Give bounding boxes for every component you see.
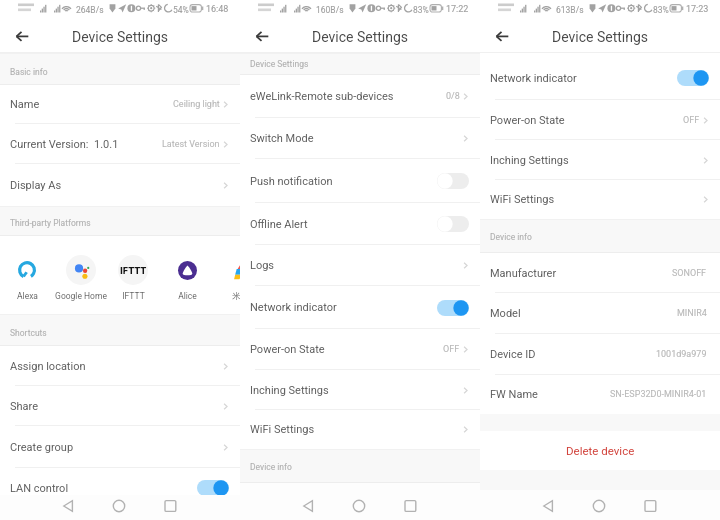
staticText: SONOFF	[672, 268, 707, 279]
staticText: Ceiling light	[173, 99, 220, 110]
staticText: Model	[490, 307, 521, 320]
button[interactable]: Home	[344, 487, 374, 517]
staticText: Offline Alert	[250, 218, 308, 231]
button[interactable]: Back	[249, 23, 275, 49]
staticText: OFF	[443, 344, 460, 355]
staticText: Switch Mode	[250, 132, 314, 145]
staticText: MINIR4	[677, 308, 707, 319]
staticText: SN-ESP32D0-MINIR4-01	[610, 389, 707, 400]
staticText: Inching Settings	[250, 384, 329, 397]
button[interactable]: Logs	[240, 245, 480, 286]
button[interactable]: WiFi Settings	[480, 180, 720, 219]
staticText: Device info	[490, 232, 532, 242]
button[interactable]: Recent apps	[635, 490, 665, 520]
button[interactable]: Google Home	[54, 236, 108, 314]
button[interactable]: Home	[104, 495, 134, 520]
staticText: Power-on State	[250, 343, 325, 356]
button[interactable]: LAN control	[0, 468, 240, 508]
button[interactable]: IFTTT	[106, 236, 160, 314]
staticText: Alexa	[17, 291, 38, 301]
staticText: Assign location	[10, 360, 86, 373]
button[interactable]: Manufacturer	[480, 253, 720, 293]
staticText: 54%	[173, 5, 189, 15]
button[interactable]: Current Version: 1.0.1	[0, 124, 240, 164]
staticText: FW Name	[490, 388, 538, 401]
button[interactable]: Network indicator	[240, 286, 480, 329]
button[interactable]: Back	[294, 487, 324, 517]
button[interactable]: Delete device	[480, 431, 720, 470]
staticText: 83%	[653, 5, 669, 15]
button[interactable]: Toggle on	[677, 70, 709, 86]
staticText: 16:48	[206, 4, 229, 15]
staticText: Push notification	[250, 175, 333, 188]
button[interactable]: Home	[584, 490, 614, 520]
button[interactable]: Toggle on	[437, 300, 469, 316]
button[interactable]: Back	[489, 23, 515, 49]
staticText: 160B/s	[316, 5, 344, 15]
staticText: WiFi Settings	[490, 193, 555, 206]
button[interactable]: Name	[0, 85, 240, 124]
staticText: Basic info	[10, 67, 48, 77]
button[interactable]: Recent apps	[155, 495, 185, 520]
staticText: Network indicator	[250, 301, 337, 314]
staticText: 17:22	[446, 4, 469, 15]
staticText: Name	[10, 98, 40, 111]
button[interactable]: Toggle off	[437, 216, 469, 232]
staticText: 613B/s	[556, 5, 584, 15]
button[interactable]: Device ID	[480, 334, 720, 375]
button[interactable]: eWeLink-Remote sub-devices	[240, 75, 480, 118]
staticText: Device info	[250, 462, 292, 472]
staticText: 17:23	[686, 4, 709, 15]
button[interactable]: Inching Settings	[240, 370, 480, 410]
button[interactable]: Power-on State	[480, 100, 720, 140]
staticText: Logs	[250, 259, 275, 272]
staticText: IFTTT	[120, 265, 147, 276]
staticText: 264B/s	[76, 5, 104, 15]
button[interactable]: Display As	[0, 164, 240, 206]
button[interactable]: Toggle off	[437, 173, 469, 189]
button[interactable]: Back	[54, 495, 84, 520]
button[interactable]: Create group	[0, 426, 240, 468]
staticText: WiFi Settings	[250, 423, 315, 436]
staticText: 83%	[413, 5, 429, 15]
staticText: OFF	[683, 115, 700, 126]
staticText: Create group	[10, 441, 74, 454]
staticText: LAN control	[10, 482, 69, 495]
button[interactable]: WiFi Settings	[240, 410, 480, 449]
button[interactable]: Back	[534, 490, 564, 520]
staticText: IFTTT	[122, 291, 145, 301]
staticText: Current Version: 1.0.1	[10, 138, 119, 151]
button[interactable]: Alice	[160, 236, 214, 314]
staticText: Device Settings	[312, 29, 409, 45]
staticText: Manufacturer	[490, 267, 557, 280]
button[interactable]: Switch Mode	[240, 118, 480, 159]
staticText: Device Settings	[250, 59, 309, 69]
button[interactable]: Toggle on	[197, 480, 229, 496]
button[interactable]: Share	[0, 386, 240, 426]
button[interactable]: Offline Alert	[240, 203, 480, 245]
button[interactable]: Power-on State	[240, 329, 480, 370]
staticText: Device ID	[490, 348, 536, 361]
staticText: Share	[10, 400, 39, 413]
staticText: Alice	[178, 291, 197, 301]
staticText: 0/8	[446, 91, 460, 102]
button[interactable]: Assign location	[0, 346, 240, 386]
staticText: Google Home	[55, 291, 107, 301]
staticText: Network indicator	[490, 72, 577, 85]
button[interactable]: FW Name	[480, 375, 720, 414]
button[interactable]: Back	[9, 23, 35, 49]
staticText: Inching Settings	[490, 154, 569, 167]
button[interactable]: Alexa	[0, 236, 54, 314]
button[interactable]: Push notification	[240, 159, 480, 203]
button[interactable]: Recent apps	[395, 487, 425, 517]
staticText: Display As	[10, 179, 62, 192]
staticText: Device Settings	[552, 29, 649, 45]
button[interactable]: Inching Settings	[480, 140, 720, 180]
staticText: eWeLink-Remote sub-devices	[250, 90, 394, 103]
button[interactable]: 米家	[213, 236, 267, 314]
button[interactable]: Model	[480, 293, 720, 334]
staticText: Power-on State	[490, 114, 565, 127]
staticText: Latest Version	[162, 139, 220, 150]
staticText: Third-party Platforms	[10, 218, 91, 228]
button[interactable]: Network indicator	[480, 56, 720, 100]
